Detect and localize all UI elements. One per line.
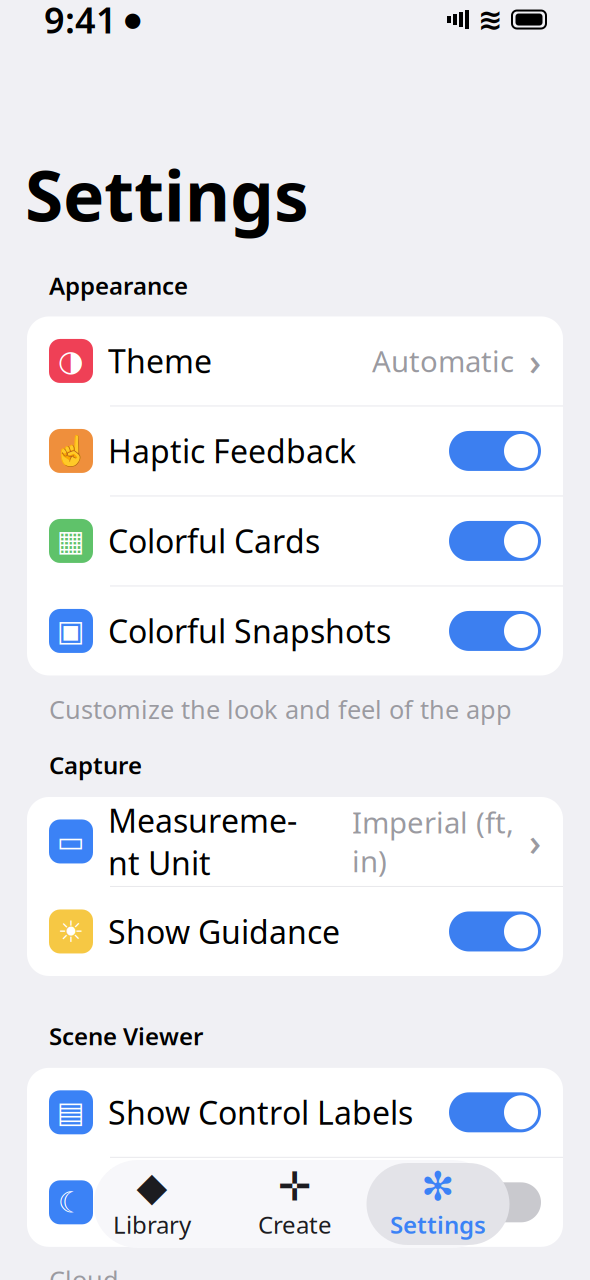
staticText: › <box>529 817 541 866</box>
button[interactable]: ☀ <box>27 887 563 976</box>
staticText: Settings <box>390 1209 486 1240</box>
staticText: Customize the look and feel of the app <box>49 692 512 726</box>
staticText: Scene Viewer <box>49 1020 203 1052</box>
button[interactable]: ✛ <box>223 1163 366 1245</box>
staticText: Imperial (ft, in) <box>352 802 514 880</box>
staticText: Library <box>113 1209 191 1240</box>
staticText: Colorful Cards <box>108 520 320 562</box>
staticText: ▤ <box>57 1096 85 1129</box>
staticText: ▭ <box>57 825 85 858</box>
button[interactable]: ▦ <box>27 496 563 585</box>
button[interactable]: ▤ <box>27 1068 563 1157</box>
staticText: ◑ <box>58 344 84 378</box>
staticText: ▦ <box>57 524 85 558</box>
staticText: ☝ <box>52 434 89 468</box>
button[interactable]: ◑ <box>27 316 563 405</box>
staticText: Theme <box>108 340 212 382</box>
button[interactable]: ◆ <box>80 1163 223 1245</box>
staticText: ✛ <box>278 1164 312 1209</box>
staticText: Show Control Labels <box>108 1091 413 1134</box>
staticText: Automatic <box>372 341 514 380</box>
staticText: ◆ <box>136 1164 167 1209</box>
staticText: Haptic Feedback <box>108 430 356 472</box>
staticText: ✻ <box>421 1164 455 1209</box>
button[interactable]: ▭ <box>27 797 563 886</box>
staticText: Cloud <box>49 1263 119 1280</box>
button[interactable]: ▣ <box>27 586 563 675</box>
staticText: Appearance <box>49 270 188 301</box>
staticText: ● <box>124 8 141 31</box>
staticText: 9:41 <box>44 0 117 43</box>
staticText: › <box>529 336 541 386</box>
staticText: Show Guidance <box>108 910 340 953</box>
staticText: ☀ <box>58 915 84 948</box>
staticText: ☾ <box>58 1186 84 1219</box>
staticText: Colorful Snapshots <box>108 610 391 652</box>
staticText: ≋ <box>478 3 503 36</box>
staticText: Create <box>258 1209 332 1240</box>
staticText: Settings <box>25 148 309 241</box>
button[interactable]: ✻ <box>366 1163 509 1245</box>
staticText: ▣ <box>57 614 85 648</box>
staticText: Capture <box>49 749 142 781</box>
staticText: Measurement Unit <box>108 799 297 884</box>
button[interactable]: ☝ <box>27 406 563 495</box>
button[interactable]: ☾ <box>27 1158 563 1247</box>
staticText: Dark Mode Background <box>108 1160 291 1245</box>
